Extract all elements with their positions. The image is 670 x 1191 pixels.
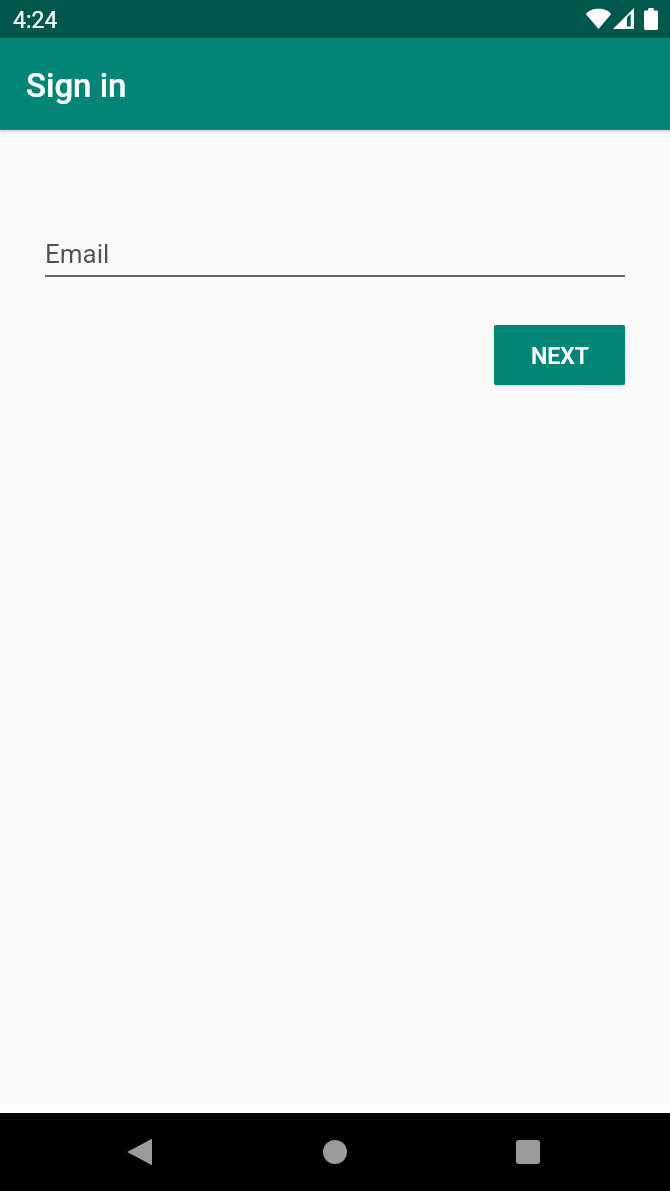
staticText: NEXT: [531, 343, 589, 370]
button[interactable]: Email: [45, 224, 625, 277]
button[interactable]: Recent apps: [485, 1113, 571, 1191]
button[interactable]: Home: [292, 1113, 378, 1191]
button[interactable]: NEXT: [494, 325, 625, 385]
button[interactable]: Back: [97, 1113, 183, 1191]
staticText: Email: [45, 239, 110, 269]
staticText: 4:24: [13, 7, 58, 34]
staticText: Sign in: [26, 66, 127, 105]
